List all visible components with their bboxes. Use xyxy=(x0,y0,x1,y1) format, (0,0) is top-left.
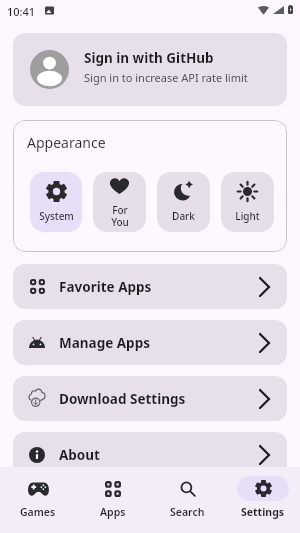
button[interactable]: Games xyxy=(0,467,75,533)
button[interactable]: Dark xyxy=(157,172,210,232)
staticText: Search xyxy=(170,505,205,519)
button[interactable]: Search xyxy=(150,467,225,533)
staticText: Apps xyxy=(100,505,126,519)
staticText: Light xyxy=(235,209,260,223)
staticText: Dark xyxy=(172,209,195,223)
staticText: Games xyxy=(20,505,56,519)
staticText: System xyxy=(39,209,74,223)
button[interactable]: System xyxy=(30,172,82,232)
button[interactable]: Sign in with GitHub xyxy=(13,33,287,106)
button[interactable]: Download Settings xyxy=(13,376,287,421)
staticText: Favorite Apps xyxy=(59,278,152,296)
button[interactable]: Favorite Apps xyxy=(13,264,287,309)
button[interactable]: Manage Apps xyxy=(13,320,287,365)
button[interactable]: Light xyxy=(221,172,274,232)
staticText: For You xyxy=(111,203,129,229)
staticText: Appearance xyxy=(27,133,106,152)
staticText: 10:41 xyxy=(7,4,36,19)
button[interactable]: Settings xyxy=(225,467,300,533)
staticText: About xyxy=(59,446,100,464)
staticText: Settings xyxy=(241,505,285,519)
button[interactable]: Apps xyxy=(75,467,150,533)
button[interactable]: About xyxy=(13,432,287,477)
staticText: Sign in with GitHub xyxy=(84,49,214,67)
staticText: Manage Apps xyxy=(59,334,150,352)
button[interactable]: For You xyxy=(93,172,146,232)
staticText: Download Settings xyxy=(59,390,186,408)
staticText: Sign in to increase API rate limit xyxy=(84,70,248,85)
